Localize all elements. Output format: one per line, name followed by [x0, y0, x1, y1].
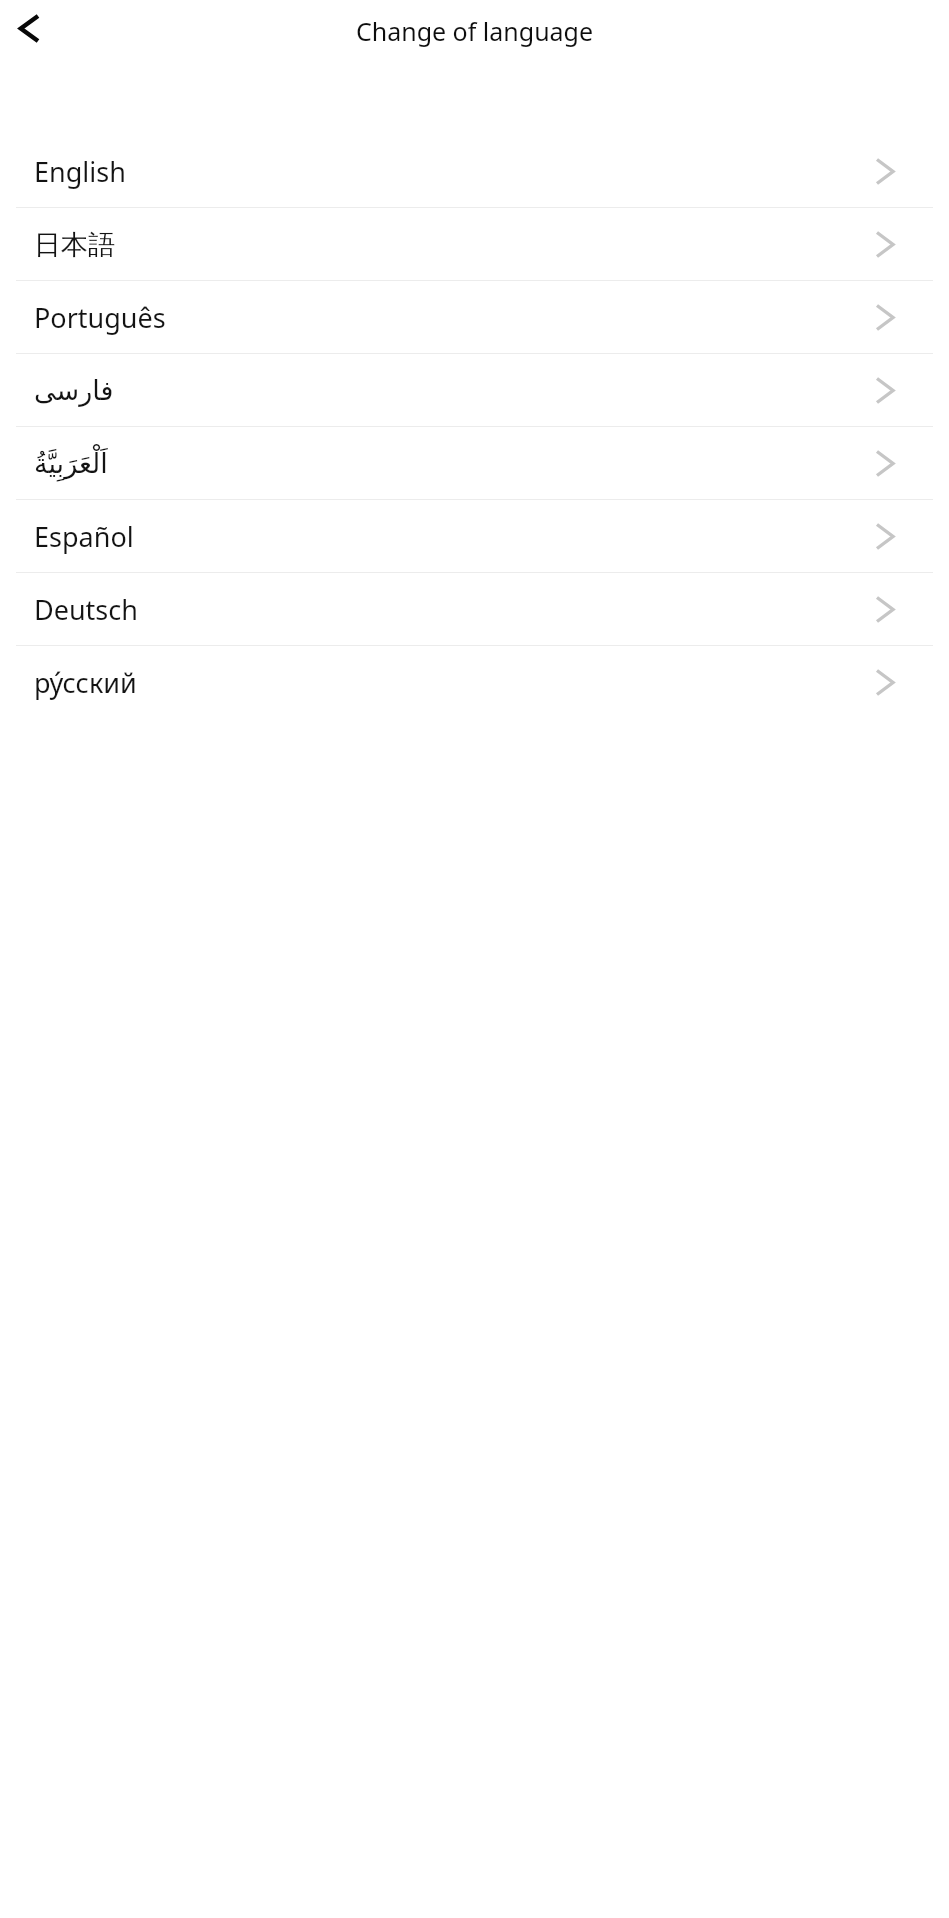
- button[interactable]: English: [0, 135, 949, 208]
- button[interactable]: ру́сский: [0, 646, 949, 719]
- staticText: Deutsch: [34, 591, 138, 628]
- staticText: اَلْعَرَبِيَّةُ: [34, 448, 108, 479]
- button[interactable]: فارسی: [0, 354, 949, 427]
- staticText: English: [34, 153, 126, 190]
- button[interactable]: اَلْعَرَبِيَّةُ: [0, 427, 949, 500]
- button[interactable]: 日本語: [0, 208, 949, 281]
- staticText: فارسی: [34, 375, 114, 406]
- button[interactable]: Deutsch: [0, 573, 949, 646]
- staticText: ру́сский: [34, 664, 137, 701]
- staticText: Change of language: [0, 14, 949, 48]
- button[interactable]: Português: [0, 281, 949, 354]
- staticText: Español: [34, 518, 134, 555]
- button[interactable]: Español: [0, 500, 949, 573]
- button[interactable]: Back: [0, 0, 56, 56]
- staticText: Português: [34, 299, 166, 336]
- staticText: 日本語: [34, 228, 115, 262]
